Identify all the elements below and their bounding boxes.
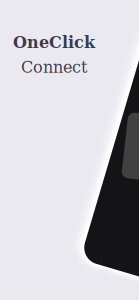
staticText: Connect <box>21 58 87 76</box>
staticText: OneClick <box>13 33 95 52</box>
